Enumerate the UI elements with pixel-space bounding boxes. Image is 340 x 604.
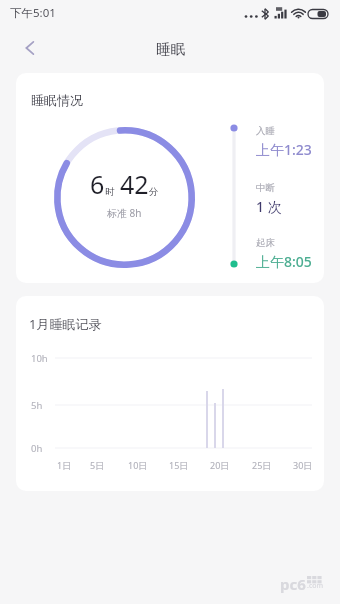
staticText: 睡眠情况 (31, 92, 83, 108)
staticText: 10日 (128, 459, 148, 471)
button[interactable]: 睡眠情况 (16, 73, 324, 283)
staticText: 1月睡眠记录 (29, 315, 102, 333)
staticText: 睡眠 (156, 40, 185, 58)
staticText: 下午5:01 (10, 5, 56, 21)
staticText: 中断 (256, 182, 275, 194)
button[interactable]: 1月睡眠记录 (16, 296, 324, 491)
staticText: 30日 (293, 459, 313, 471)
staticText: 上午8:05 (256, 252, 312, 271)
staticText: 0h (31, 442, 43, 455)
staticText: .com (307, 581, 324, 591)
button[interactable]: Back (13, 30, 49, 66)
staticText: 标准 8h (107, 206, 142, 220)
staticText: 6 (90, 167, 105, 201)
staticText: 上午1:23 (256, 140, 312, 159)
staticText: 起床 (256, 237, 275, 249)
staticText: 分 (149, 186, 159, 198)
staticText: 入睡 (256, 125, 275, 137)
staticText: 15日 (169, 459, 189, 471)
staticText: 时 (105, 186, 115, 198)
staticText: 20日 (210, 459, 230, 471)
staticText: 10h (31, 352, 48, 365)
staticText: 5h (31, 399, 43, 412)
staticText: 25日 (252, 459, 272, 471)
staticText: 42 (120, 167, 149, 201)
staticText: 1日 (57, 459, 72, 471)
staticText: 1 次 (256, 197, 282, 216)
staticText: 5日 (90, 459, 105, 471)
staticText: pc6 (280, 574, 306, 594)
